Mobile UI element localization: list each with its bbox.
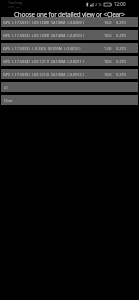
staticText: Choose one for detailed view or <Clear> <box>14 10 125 17</box>
staticText: 10.0 <box>104 33 112 38</box>
staticText: 10.0 <box>104 20 112 25</box>
button[interactable]: GPS (-17.5035) (-69.1212) 04100M (-0.001… <box>1 69 138 79</box>
staticText: 2 Tr. <box>95 2 103 7</box>
staticText: 0.270 <box>116 33 126 38</box>
staticText: GPS on <box>8 5 21 8</box>
staticText: 10.0 <box>104 59 112 64</box>
staticText: 0.270 <box>116 46 126 51</box>
staticText: All <box>4 85 9 90</box>
button[interactable]: GPS (-17.5034) (-69.1211) 04100M (-0.001… <box>1 56 138 66</box>
staticText: Tracking <box>8 0 23 5</box>
staticText: GPS (-17.5035) (-69.1212) 04100M (-0.001… <box>3 72 84 77</box>
staticText: 0.270 <box>116 72 126 77</box>
button[interactable]: Clear <box>1 95 138 105</box>
staticText: GPS (-17.5034) (-69.1211) 04100M (-0.001… <box>3 59 84 64</box>
staticText: GPS (-17.5033) ( -0.330) 05100M (-0.0010… <box>3 46 81 51</box>
button[interactable]: GPS (-17.5032) (-69.1209) 04100M (-0.001… <box>1 30 138 40</box>
staticText: Clear <box>4 98 13 103</box>
button[interactable]: GPS (-17.5031) (-69.1208) 04100M (-0.000… <box>1 17 138 27</box>
staticText: GPS (-17.5032) (-69.1209) 04100M (-0.001… <box>3 33 84 38</box>
staticText: 0.270 <box>116 59 126 64</box>
staticText: 0.270 <box>116 20 126 25</box>
button[interactable]: GPS (-17.5033) ( -0.330) 05100M (-0.0010… <box>1 43 138 53</box>
staticText: 10.0 <box>104 72 112 77</box>
staticText: 12:00 <box>114 1 126 7</box>
staticText: GPS (-17.5031) (-69.1208) 04100M (-0.000… <box>3 20 84 25</box>
staticText: 1.00 <box>104 46 112 51</box>
